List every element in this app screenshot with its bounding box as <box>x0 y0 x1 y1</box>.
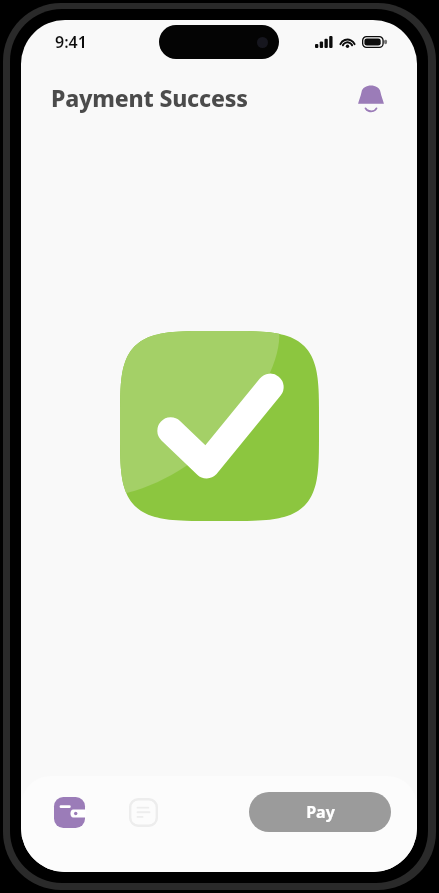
staticText: 9:41 <box>55 31 87 53</box>
button[interactable]: Transactions <box>121 790 165 834</box>
button[interactable]: Wallet <box>47 790 91 834</box>
staticText: Payment Success <box>51 82 248 113</box>
button[interactable]: Notifications <box>349 75 393 119</box>
button[interactable]: Pay <box>249 792 391 832</box>
staticText: Pay <box>306 801 335 823</box>
